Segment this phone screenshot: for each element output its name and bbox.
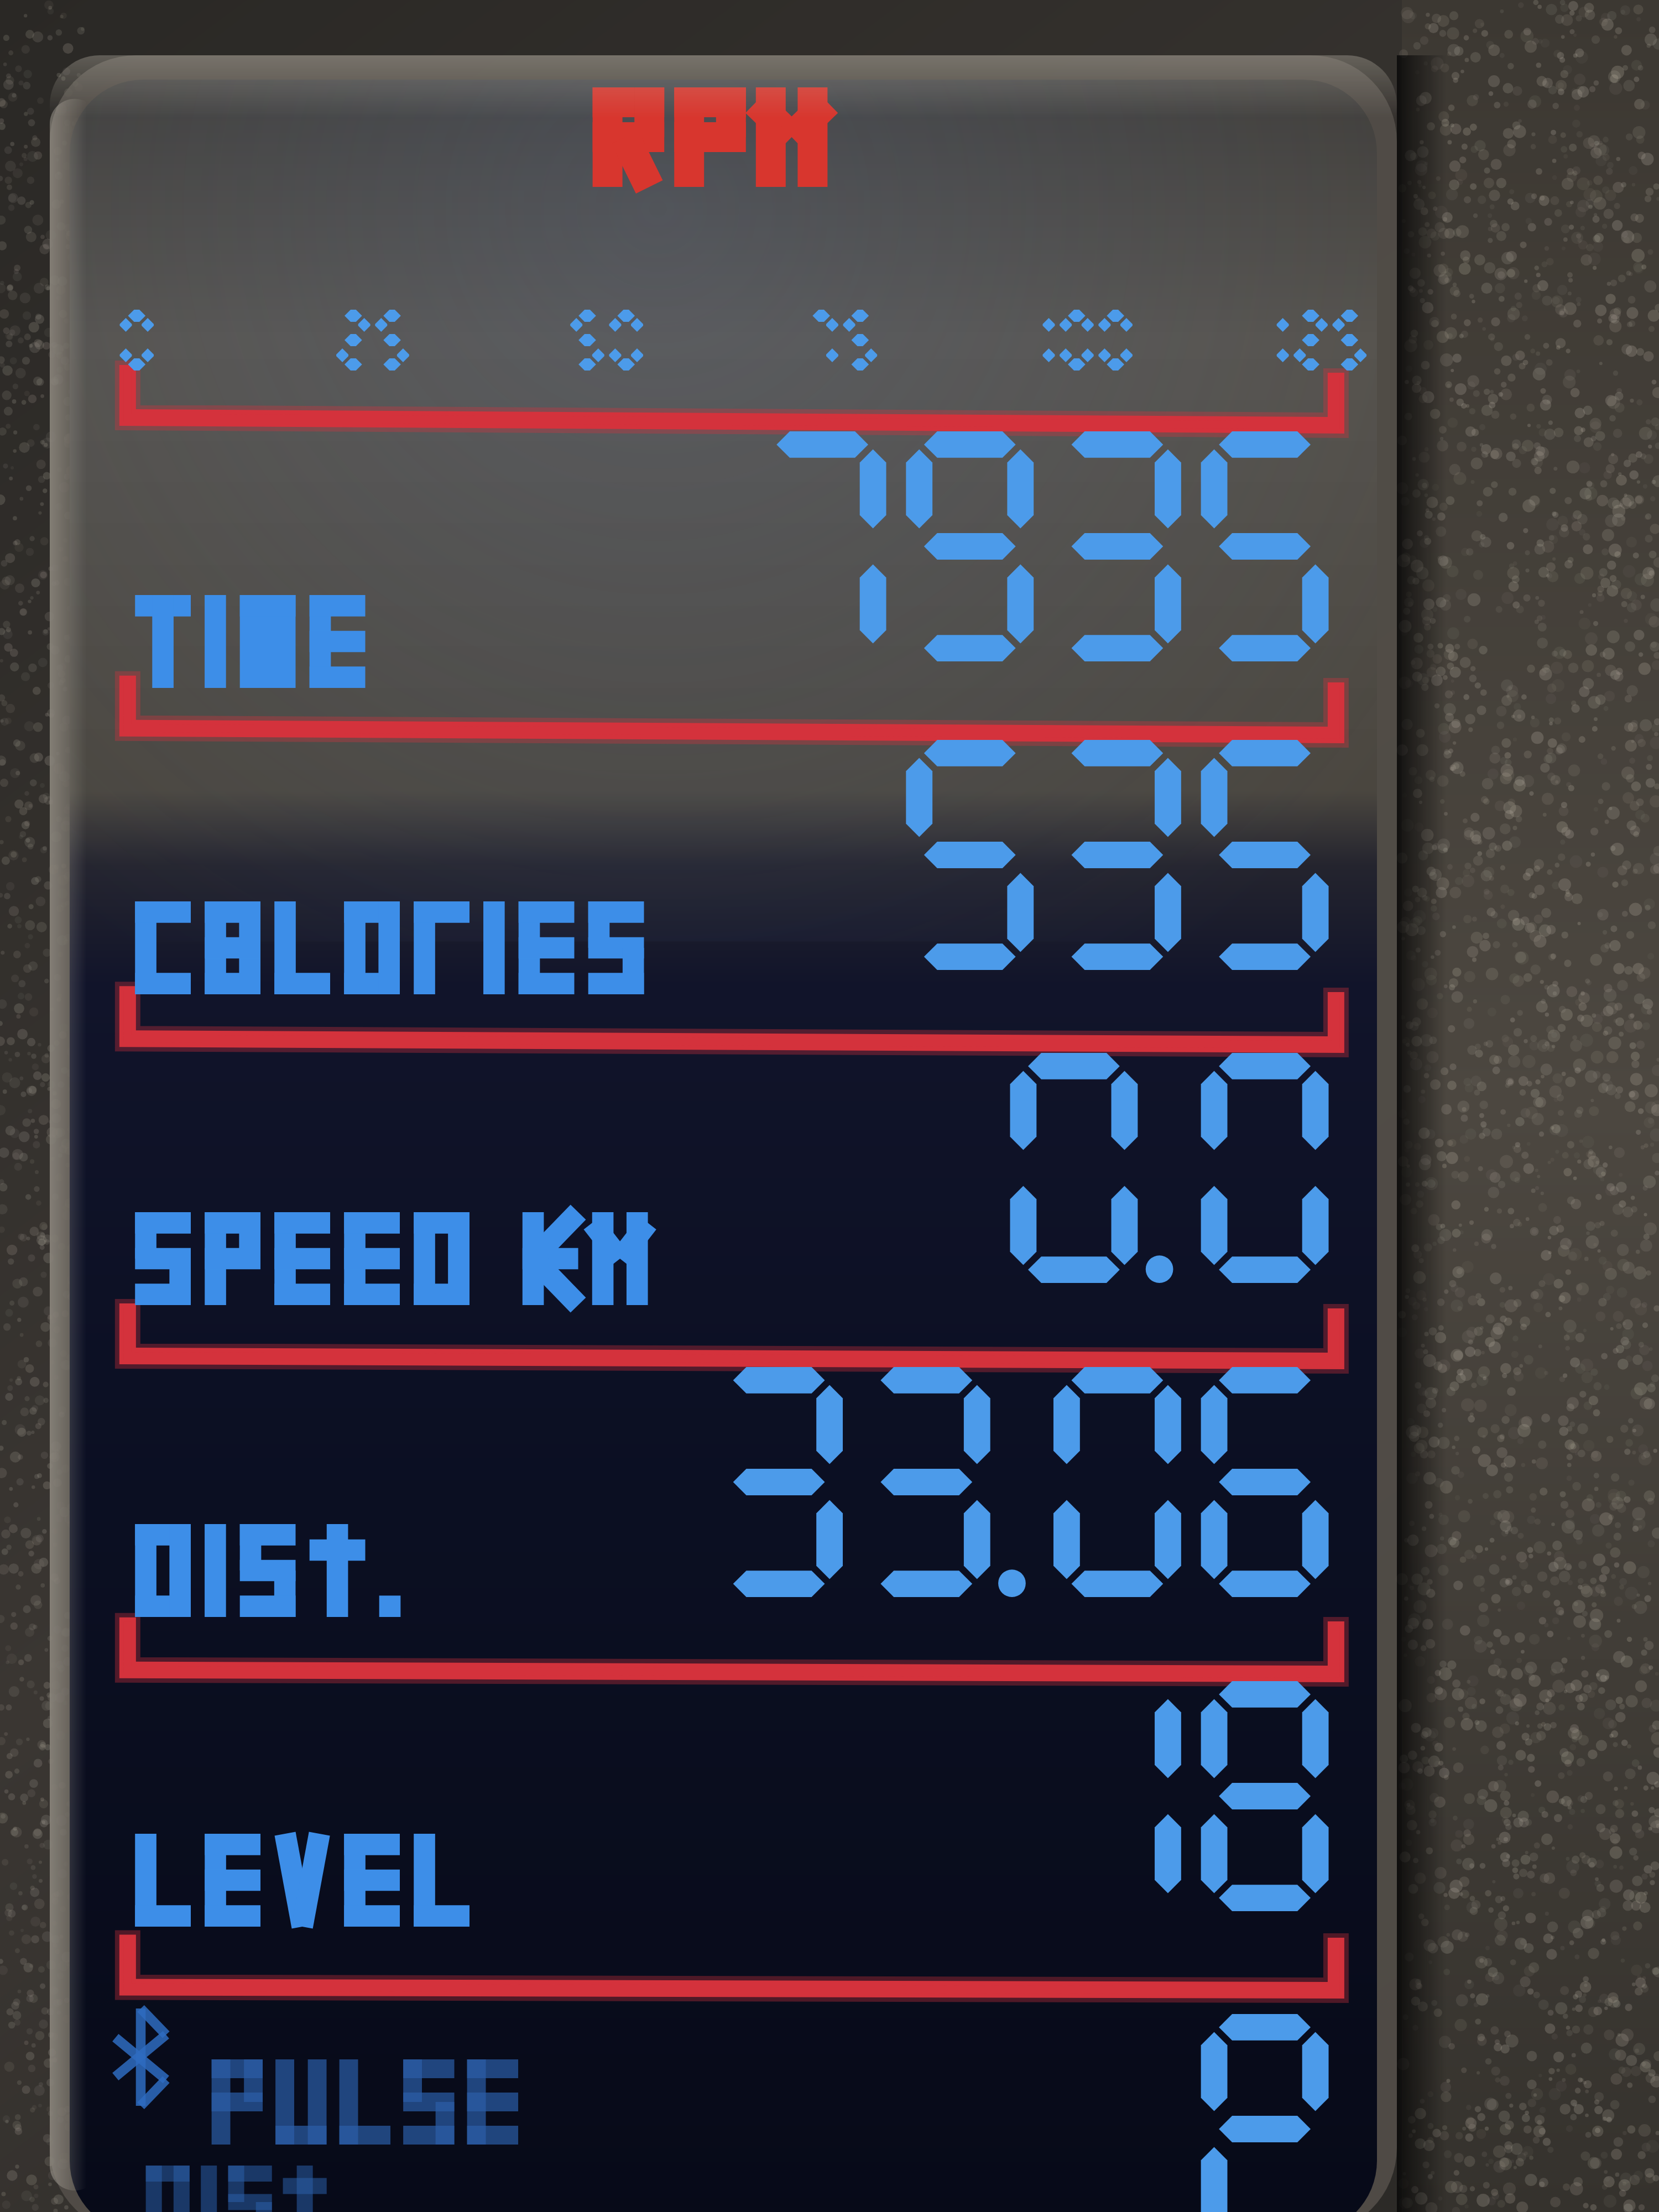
button[interactable]: Exercise bike console display [0, 0, 1659, 2212]
